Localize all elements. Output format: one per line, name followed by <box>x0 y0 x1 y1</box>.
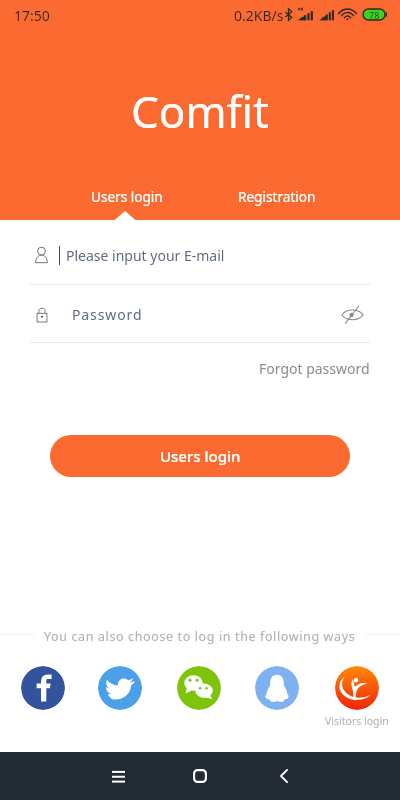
staticText: 78 <box>369 9 380 21</box>
staticText: Users login <box>160 446 241 466</box>
button[interactable]: Facebook <box>21 666 65 710</box>
button[interactable]: Users login <box>50 435 350 477</box>
button[interactable]: Back <box>260 752 308 800</box>
staticText: Registration <box>238 187 316 206</box>
staticText: Comfit <box>131 81 269 141</box>
button[interactable]: Home <box>176 752 224 800</box>
staticText: Password <box>72 305 143 324</box>
button[interactable]: Recent apps <box>94 752 142 800</box>
staticText: 0.2KB/s <box>234 6 284 25</box>
button[interactable]: Registration <box>238 187 316 206</box>
staticText: Visitors login <box>325 714 389 728</box>
button[interactable]: QQ <box>255 666 299 710</box>
staticText: 17:50 <box>14 6 50 25</box>
staticText: Forgot password <box>259 359 370 378</box>
button[interactable]: Twitter <box>98 666 142 710</box>
button[interactable]: Show password <box>336 298 368 330</box>
staticText: Please input your E-mail <box>66 246 225 265</box>
staticText: Users login <box>91 187 163 206</box>
button[interactable]: Forgot password <box>259 359 370 378</box>
button[interactable]: Users login <box>91 187 163 206</box>
button[interactable]: Visitors login <box>335 666 379 710</box>
button[interactable]: WeChat <box>177 666 221 710</box>
staticText: You can also choose to log in the follow… <box>44 628 356 645</box>
